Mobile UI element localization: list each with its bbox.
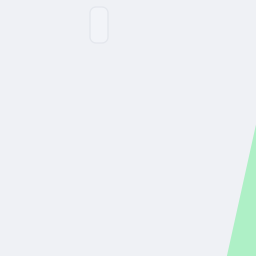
button[interactable]: Card (90, 7, 108, 43)
